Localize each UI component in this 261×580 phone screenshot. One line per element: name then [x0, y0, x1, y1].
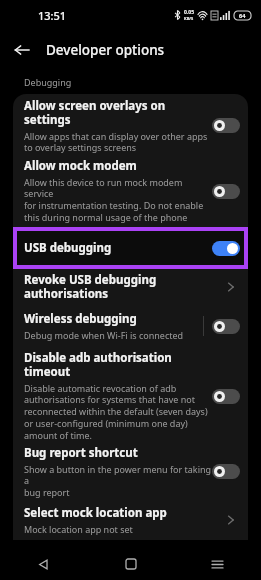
button[interactable]: Toggle	[212, 118, 240, 133]
button[interactable]: Back	[8, 36, 36, 64]
button[interactable]: Wireless debugging	[13, 303, 248, 349]
button[interactable]: Toggle	[212, 241, 240, 256]
button[interactable]: Home	[87, 548, 174, 580]
button[interactable]: Toggle	[212, 184, 240, 199]
staticText: KB/S	[184, 16, 194, 21]
staticText: Disable automatic revocation of adb auth…	[24, 382, 208, 442]
button[interactable]: Toggle	[212, 464, 240, 479]
staticText: 64	[239, 12, 246, 19]
button[interactable]: Back	[0, 548, 87, 580]
staticText: Select mock location app	[24, 505, 167, 521]
staticText: Developer options	[46, 41, 165, 59]
staticText: Revoke USB debugging authorisations	[24, 272, 226, 302]
button[interactable]: Toggle	[212, 389, 240, 404]
staticText: Bug report shortcut	[24, 445, 138, 461]
staticText: Allow this device to run mock modem serv…	[24, 176, 212, 224]
button[interactable]: Toggle	[212, 319, 240, 334]
button[interactable]: Select mock location app	[13, 500, 248, 540]
staticText: Allow screen overlays on settings	[24, 98, 212, 128]
button[interactable]: Disable adb authorisation timeout	[13, 349, 248, 443]
staticText: 0.05	[184, 9, 194, 16]
staticText: Show a button in the power menu for taki…	[24, 463, 212, 499]
button[interactable]: Recent apps	[174, 548, 261, 580]
staticText: Mock location app not set	[24, 523, 133, 535]
button[interactable]: USB debugging	[17, 231, 244, 265]
button[interactable]: Allow mock modem	[13, 157, 248, 225]
staticText: Disable adb authorisation timeout	[24, 350, 212, 380]
staticText: Debug mode when Wi-Fi is connected	[24, 329, 184, 341]
staticText: Allow apps that can display over other a…	[24, 130, 208, 154]
staticText: 13:51	[38, 8, 67, 23]
button[interactable]: Allow screen overlays on settings	[13, 94, 248, 157]
staticText: Debugging	[24, 76, 72, 88]
staticText: Wireless debugging	[24, 311, 137, 327]
button[interactable]: Revoke USB debugging authorisations	[13, 271, 248, 303]
button[interactable]: Bug report shortcut	[13, 443, 248, 500]
staticText: Allow mock modem	[24, 158, 137, 174]
staticText: USB debugging	[24, 240, 212, 256]
